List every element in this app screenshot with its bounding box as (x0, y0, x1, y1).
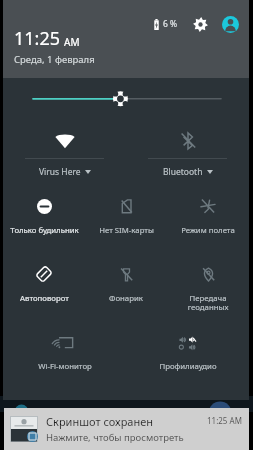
button[interactable]: Скриншот сохранен (4, 408, 249, 450)
button[interactable]: Brightness (3, 78, 249, 118)
staticText: 11:25 (14, 26, 61, 51)
button[interactable]: Wi-Fi-монитор (3, 320, 126, 388)
staticText: Скриншот сохранен (46, 414, 154, 429)
button[interactable]: Режим полета (167, 184, 249, 252)
staticText: Нет SIM-карты (99, 225, 154, 236)
staticText: Virus Here (39, 166, 81, 178)
staticText: Фонарик (109, 293, 143, 304)
staticText: Профилиаудио (159, 361, 217, 372)
button[interactable]: Settings (189, 13, 211, 35)
button[interactable]: Передача геоданных (167, 252, 249, 320)
staticText: 11:25 AM (207, 415, 242, 426)
button[interactable]: Bluetooth (126, 122, 249, 184)
staticText: Только будильник (10, 225, 79, 236)
button[interactable]: User profile (219, 13, 241, 35)
staticText: 6 % (163, 18, 178, 30)
button[interactable]: Virus Here (3, 122, 126, 184)
button[interactable]: Автоповорот (3, 252, 85, 320)
staticText: Нажмите, чтобы просмотреть (46, 431, 184, 444)
staticText: Bluetooth (163, 166, 203, 178)
staticText: Среда, 1 февраля (14, 53, 95, 66)
button[interactable]: Фонарик (85, 252, 167, 320)
staticText: AM (64, 35, 80, 49)
button[interactable]: Профилиаудио (126, 320, 249, 388)
staticText: Автоповорот (20, 293, 69, 304)
staticText: Wi-Fi-монитор (38, 361, 92, 372)
button[interactable]: Нет SIM-карты (85, 184, 167, 252)
staticText: Передача геоданных (169, 293, 247, 313)
button[interactable]: Только будильник (3, 184, 85, 252)
staticText: Режим полета (181, 225, 235, 236)
